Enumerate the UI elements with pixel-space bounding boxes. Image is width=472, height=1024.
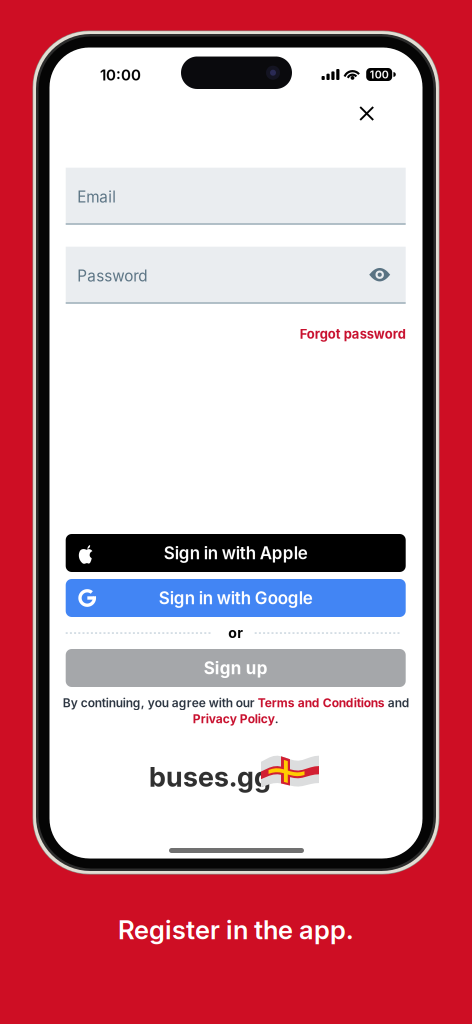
staticText: 10:00 <box>100 66 141 84</box>
staticText: Sign in with Apple <box>164 543 308 563</box>
button[interactable]: Sign in with Apple <box>66 534 406 572</box>
staticText: Forgot password <box>300 326 406 342</box>
button[interactable]: Close <box>346 94 388 132</box>
staticText: 100 <box>370 68 389 81</box>
staticText: Register in the app. <box>118 914 354 945</box>
button[interactable]: Sign up <box>66 649 406 687</box>
button[interactable]: Sign in with Google <box>66 579 406 617</box>
button[interactable]: Terms and Conditions <box>258 696 385 710</box>
staticText: Privacy Policy <box>193 712 275 726</box>
staticText: By continuing, you agree with our <box>63 696 258 710</box>
staticText: buses.gg <box>149 760 271 793</box>
staticText: Password <box>77 267 147 285</box>
staticText: Email <box>77 188 116 206</box>
button[interactable]: Forgot password <box>66 321 406 347</box>
button[interactable]: Privacy Policy <box>193 712 275 726</box>
staticText: . <box>275 712 279 726</box>
staticText: Sign in with Google <box>159 588 313 608</box>
staticText: and <box>385 696 409 710</box>
staticText: or <box>228 624 243 641</box>
button[interactable]: Show password <box>362 257 398 293</box>
staticText: Sign up <box>204 658 268 678</box>
staticText: Terms and Conditions <box>258 696 385 710</box>
